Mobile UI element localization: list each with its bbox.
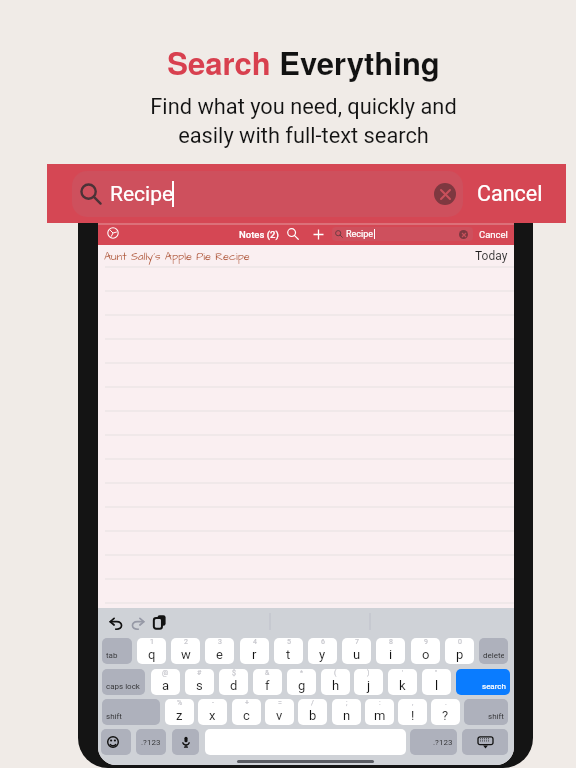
button[interactable]: 2 [171, 638, 200, 664]
button[interactable]: Undo [109, 616, 124, 631]
staticText: Cancel [477, 181, 543, 206]
button[interactable]: .?123 [410, 729, 457, 755]
button[interactable]: 1 [137, 638, 166, 664]
staticText: Recipe [346, 229, 374, 240]
button[interactable]: $ [219, 669, 248, 695]
staticText: z [176, 708, 183, 723]
staticText: . [445, 699, 447, 707]
button[interactable]: Cancel [473, 223, 514, 245]
staticText: @ [162, 669, 169, 677]
button[interactable]: Cancel [467, 164, 553, 223]
staticText: ) [367, 669, 370, 677]
button[interactable]: 7 [342, 638, 371, 664]
button[interactable]: + [232, 699, 261, 725]
staticText: k [399, 678, 406, 693]
staticText: # [197, 669, 202, 677]
button[interactable]: delete [479, 638, 508, 664]
button[interactable]: % [165, 699, 194, 725]
staticText: - [212, 699, 214, 707]
button[interactable]: 5 [274, 638, 303, 664]
staticText: a [162, 678, 170, 693]
staticText: y [319, 647, 326, 662]
button[interactable]: & [253, 669, 282, 695]
button[interactable]: Paste [153, 615, 167, 629]
button[interactable]: * [287, 669, 316, 695]
button[interactable]: 8 [376, 638, 405, 664]
staticText: search [482, 682, 506, 691]
staticText: ' [402, 669, 404, 677]
staticText: w [181, 647, 191, 662]
button[interactable]: Aunt Sally's Apple Pie Recipe [104, 249, 250, 264]
staticText: 0 [458, 638, 462, 646]
staticText: n [343, 708, 351, 723]
staticText: 3 [218, 638, 222, 646]
staticText: Find what you need, quickly and easily w… [150, 94, 457, 148]
button[interactable]: Dictation [172, 729, 199, 755]
button[interactable]: 6 [308, 638, 337, 664]
button[interactable]: ( [321, 669, 350, 695]
button[interactable]: search [456, 669, 510, 695]
staticText: m [374, 708, 386, 723]
button[interactable]: / [298, 699, 327, 725]
staticText: 2 [184, 638, 188, 646]
staticText: ( [334, 669, 337, 677]
staticText: 8 [389, 638, 393, 646]
button[interactable]: caps lock [102, 669, 145, 695]
button[interactable]: ) [354, 669, 383, 695]
staticText: " [435, 669, 438, 677]
button[interactable]: Emoji [101, 729, 131, 755]
button[interactable]: 9 [411, 638, 440, 664]
button[interactable]: shift [464, 699, 508, 725]
staticText: j [367, 678, 371, 693]
staticText: ! [411, 708, 415, 723]
staticText: : [379, 699, 381, 707]
button[interactable]: . [431, 699, 460, 725]
staticText: 7 [355, 638, 359, 646]
staticText: v [276, 708, 283, 723]
staticText: r [252, 647, 257, 662]
button[interactable]: , [398, 699, 427, 725]
button[interactable]: .?123 [136, 729, 166, 755]
button[interactable]: New note [312, 228, 324, 240]
staticText: t [286, 647, 291, 662]
button[interactable]: Recipe [72, 171, 463, 217]
button[interactable]: 4 [240, 638, 269, 664]
staticText: ? [442, 708, 449, 723]
button[interactable]: shift [102, 699, 160, 725]
button[interactable]: Navigator [102, 223, 124, 244]
staticText: + [245, 699, 249, 707]
staticText: shift [488, 712, 504, 721]
button[interactable]: # [185, 669, 214, 695]
button[interactable]: ; [332, 699, 361, 725]
button[interactable]: Clear search text [434, 183, 456, 205]
button[interactable]: tab [102, 638, 132, 664]
button[interactable]: ' [388, 669, 417, 695]
button[interactable]: - [198, 699, 227, 725]
staticText: c [243, 708, 250, 723]
button[interactable]: : [365, 699, 394, 725]
staticText: Cancel [479, 229, 508, 240]
staticText: o [422, 647, 430, 662]
staticText: e [216, 647, 223, 662]
staticText: caps lock [106, 682, 140, 691]
staticText: q [148, 647, 156, 662]
staticText: d [230, 678, 238, 693]
staticText: Today [475, 249, 508, 263]
button[interactable]: = [265, 699, 294, 725]
button[interactable]: Hide keyboard [462, 729, 508, 755]
button[interactable]: " [422, 669, 451, 695]
staticText: , [412, 699, 414, 707]
staticText: 1 [150, 638, 154, 646]
button[interactable]: @ [151, 669, 180, 695]
staticText: .?123 [141, 738, 161, 747]
button[interactable]: Search notes [287, 228, 299, 240]
button[interactable]: Recipe [332, 227, 473, 241]
button[interactable]: 3 [205, 638, 234, 664]
button[interactable]: Redo [130, 616, 145, 631]
staticText: 6 [321, 638, 325, 646]
button[interactable]: 0 [445, 638, 474, 664]
staticText: h [332, 678, 340, 693]
staticText: x [209, 708, 216, 723]
button[interactable]: Clear [459, 230, 468, 239]
